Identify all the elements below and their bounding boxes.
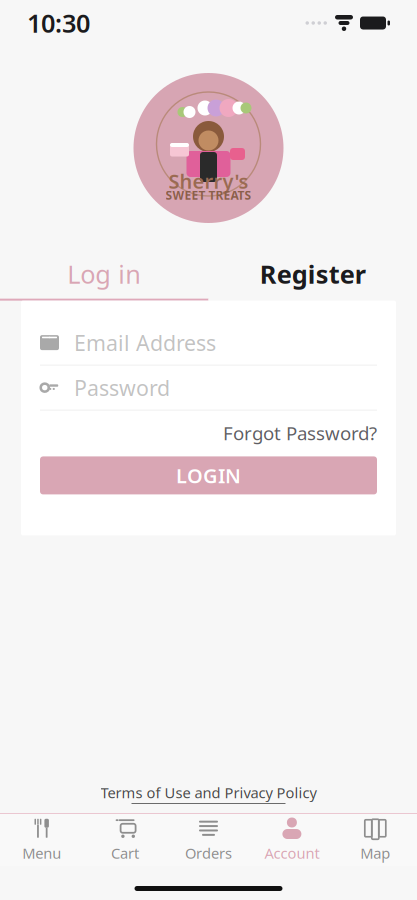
button[interactable]: Orders [167, 814, 250, 866]
staticText: Menu [22, 843, 61, 863]
staticText: Orders [185, 843, 232, 863]
staticText: SWEET TREATS [165, 187, 251, 203]
button[interactable]: LOGIN [40, 456, 377, 494]
staticText: Forgot Password? [223, 421, 377, 445]
staticText: Sherry's [168, 168, 248, 194]
staticText: Map [360, 843, 390, 863]
staticText: Log in [67, 257, 141, 291]
button[interactable]: Map [334, 814, 417, 866]
button[interactable]: Account [250, 814, 334, 866]
staticText: 10:30 [27, 6, 90, 40]
staticText: Password [74, 373, 170, 402]
staticText: LOGIN [176, 462, 241, 489]
button[interactable]: Menu [0, 814, 83, 866]
button[interactable]: Terms of Use and Privacy Policy [100, 783, 316, 804]
staticText: Account [264, 843, 319, 863]
button[interactable]: Email Address [21, 321, 396, 365]
staticText: Email Address [74, 328, 216, 357]
staticText: Register [260, 257, 366, 291]
button[interactable]: Password [21, 366, 396, 410]
button[interactable]: Forgot Password? [223, 421, 377, 445]
button[interactable]: Log in [0, 249, 208, 299]
button[interactable]: Cart [83, 814, 167, 866]
button[interactable]: Register [208, 249, 417, 299]
staticText: Cart [111, 843, 139, 863]
staticText: Terms of Use and Privacy Policy [100, 783, 316, 802]
